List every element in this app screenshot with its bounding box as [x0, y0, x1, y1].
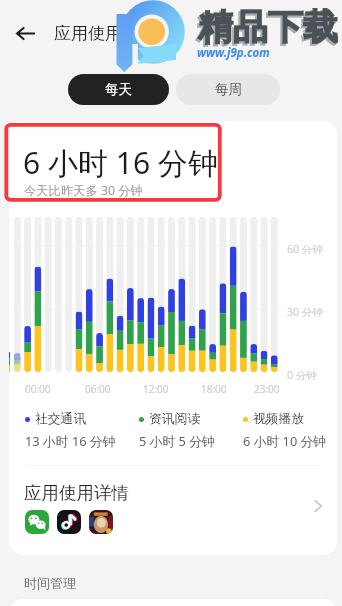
staticText: 12:00: [143, 382, 169, 396]
button[interactable]: Back: [9, 17, 41, 49]
staticText: 视频播放: [253, 411, 305, 427]
staticText: 今天比昨天多 30 分钟: [24, 182, 143, 199]
staticText: 60 分钟: [287, 242, 323, 256]
staticText: 5 小时 5 分钟: [139, 432, 215, 449]
button[interactable]: 每周: [176, 74, 280, 105]
staticText: 精品下载: [196, 7, 336, 51]
staticText: 精品下载: [198, 5, 338, 49]
staticText: 0 分钟: [287, 368, 317, 382]
staticText: 6 小时 10 分钟: [243, 432, 327, 449]
staticText: 资讯阅读: [149, 411, 201, 427]
staticText: 13 小时 16 分钟: [25, 432, 116, 449]
staticText: 00:00: [25, 382, 51, 396]
staticText: 30 分钟: [287, 305, 323, 319]
staticText: 18:00: [201, 382, 227, 396]
staticText: 应用使用详情: [24, 482, 129, 504]
staticText: 每周: [215, 81, 242, 98]
staticText: 应用使用时间: [54, 23, 156, 44]
staticText: 每天: [105, 81, 132, 98]
button[interactable]: 每天: [68, 74, 169, 105]
staticText: 时间管理: [24, 575, 76, 591]
staticText: 6 小时 16 分钟: [23, 142, 218, 183]
staticText: www.j9p.com: [197, 45, 270, 61]
staticText: 23:00: [254, 382, 280, 396]
button[interactable]: 应用使用详情: [9, 466, 337, 555]
staticText: 06:00: [85, 382, 111, 396]
staticText: 社交通讯: [35, 411, 87, 427]
